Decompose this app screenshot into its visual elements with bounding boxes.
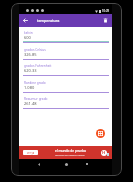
staticText: grados Celsius bbox=[24, 48, 46, 52]
staticText: 620.33 bbox=[24, 68, 37, 73]
button[interactable]: Back bbox=[35, 160, 43, 168]
button[interactable]: Calculate bbox=[96, 129, 105, 138]
button[interactable]: Back bbox=[21, 16, 30, 25]
staticText: el mundo de prueba bbox=[55, 149, 86, 153]
staticText: grados Fahrenheit bbox=[24, 64, 52, 68]
staticText: H bbox=[102, 150, 106, 156]
staticText: 261.48 bbox=[24, 101, 37, 106]
button[interactable]: grados Fahrenheit bbox=[19, 60, 112, 77]
button[interactable]: Rankine grado bbox=[19, 77, 112, 94]
staticText: 10:29 bbox=[102, 9, 110, 13]
staticText: 600 bbox=[24, 35, 31, 40]
button[interactable]: grados Celsius bbox=[19, 44, 112, 61]
staticText: Reaumur grado bbox=[24, 97, 48, 101]
staticText: kelvin bbox=[24, 31, 33, 35]
staticText: ver ya bbox=[27, 151, 35, 155]
staticText: 1.080 bbox=[24, 85, 35, 90]
button[interactable]: kelvin bbox=[19, 27, 112, 44]
staticText: temperatura bbox=[37, 18, 60, 23]
staticText: 326.85 bbox=[24, 52, 37, 57]
button[interactable]: Recents bbox=[83, 160, 91, 168]
button[interactable]: Reaumur grado bbox=[19, 93, 112, 110]
staticText: Rankine grado bbox=[24, 81, 46, 85]
staticText: descubre las mejores ofertas bbox=[55, 154, 85, 157]
button[interactable]: ver ya bbox=[19, 146, 112, 159]
button[interactable]: Delete bbox=[101, 16, 110, 25]
button[interactable]: Home bbox=[62, 160, 70, 168]
